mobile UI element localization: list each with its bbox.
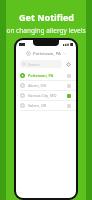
button[interactable]: Notification toggle (66, 73, 72, 79)
staticText: on changing allergy levels (6, 26, 86, 35)
button[interactable]: Notification toggle (66, 83, 72, 89)
button[interactable]: Salem, OR (16, 101, 76, 110)
button[interactable]: Pottstown, PA (16, 48, 76, 59)
staticText: Salem, OR (28, 103, 47, 108)
button[interactable]: Notification toggle (66, 103, 72, 109)
button[interactable]: Kansas City, MO (16, 91, 76, 100)
button[interactable]: Pottstown, PA (16, 71, 76, 80)
staticText: Akron, OH (28, 83, 47, 88)
staticText: Kansas City, MO (28, 93, 57, 98)
staticText: Get Notified (19, 11, 74, 23)
staticText: Search (28, 62, 40, 67)
staticText: Pottstown, PA (28, 73, 54, 78)
button[interactable]: Search (20, 60, 62, 68)
button[interactable]: Settings (65, 61, 72, 68)
button[interactable]: Akron, OH (16, 81, 76, 90)
button[interactable]: Notification toggle (66, 93, 72, 99)
staticText: Pottstown, PA (33, 51, 61, 57)
